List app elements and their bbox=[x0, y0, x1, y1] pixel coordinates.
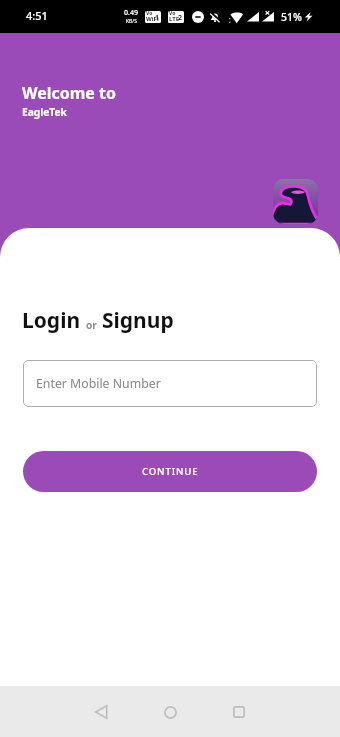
staticText: EagleTek bbox=[22, 105, 67, 119]
staticText: Signup bbox=[102, 306, 174, 335]
button[interactable]: CONTINUE bbox=[23, 451, 317, 492]
staticText: Login bbox=[22, 306, 81, 335]
button[interactable]: Enter Mobile Number bbox=[23, 360, 317, 407]
staticText: 1 bbox=[155, 13, 160, 23]
staticText: Vo bbox=[169, 11, 176, 17]
staticText: Enter Mobile Number bbox=[36, 375, 161, 392]
staticText: KB/S bbox=[126, 18, 137, 25]
button[interactable]: Recent apps bbox=[217, 690, 261, 734]
staticText: or bbox=[86, 318, 97, 332]
staticText: 0.49 bbox=[124, 8, 138, 18]
staticText: 4:51 bbox=[26, 8, 48, 23]
staticText: WiFi bbox=[146, 15, 159, 23]
staticText: 51% bbox=[281, 10, 302, 24]
staticText: LTE bbox=[169, 15, 180, 23]
button[interactable]: Back bbox=[79, 690, 123, 734]
staticText: Vo bbox=[146, 11, 153, 17]
staticText: CONTINUE bbox=[142, 465, 199, 478]
staticText: Welcome to bbox=[22, 82, 116, 104]
staticText: 2 bbox=[178, 13, 183, 23]
button[interactable]: Home bbox=[148, 690, 192, 734]
